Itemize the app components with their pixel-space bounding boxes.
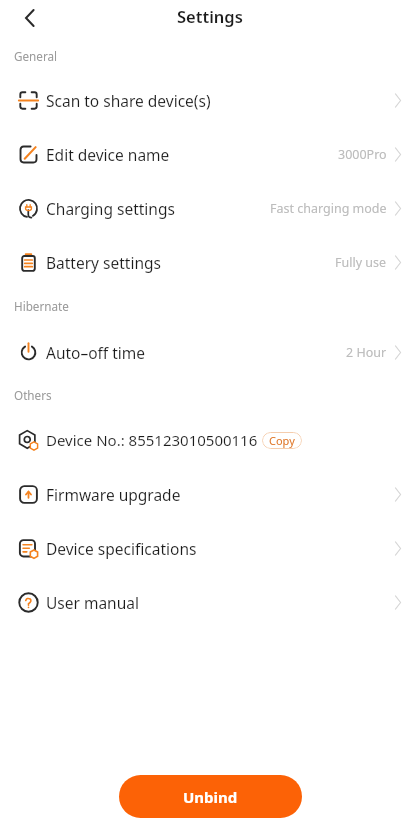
button[interactable]: Copy — [262, 432, 302, 449]
staticText: Edit device name — [46, 144, 170, 165]
button[interactable]: User manual — [0, 575, 420, 629]
staticText: Hibernate — [14, 298, 69, 314]
staticText: Fully use — [335, 254, 387, 271]
staticText: 2 Hour — [346, 344, 387, 361]
staticText: Charging settings — [46, 198, 175, 219]
button[interactable]: Auto–off time — [0, 325, 420, 379]
button[interactable]: Device No.: 855123010500116 — [0, 413, 420, 467]
staticText: Battery settings — [46, 252, 161, 273]
staticText: General — [14, 48, 58, 64]
button[interactable]: Battery settings — [0, 235, 420, 289]
button[interactable]: Unbind — [119, 775, 302, 818]
staticText: Copy — [269, 433, 295, 448]
staticText: Device specifications — [46, 538, 197, 559]
staticText: 3000Pro — [338, 146, 387, 163]
staticText: Auto–off time — [46, 342, 146, 363]
staticText: Settings — [177, 5, 243, 27]
staticText: Unbind — [183, 787, 238, 807]
staticText: Others — [14, 387, 52, 403]
staticText: Device No.: 855123010500116 — [46, 430, 258, 450]
button[interactable]: Device specifications — [0, 521, 420, 575]
staticText: Fast charging mode — [270, 200, 387, 217]
button[interactable]: Charging settings — [0, 181, 420, 235]
button[interactable]: Edit device name — [0, 127, 420, 181]
button[interactable]: Firmware upgrade — [0, 467, 420, 521]
button[interactable]: Scan to share device(s) — [0, 73, 420, 127]
staticText: Firmware upgrade — [46, 484, 181, 505]
staticText: User manual — [46, 592, 139, 613]
button[interactable]: Back — [14, 2, 46, 34]
staticText: Scan to share device(s) — [46, 90, 211, 111]
